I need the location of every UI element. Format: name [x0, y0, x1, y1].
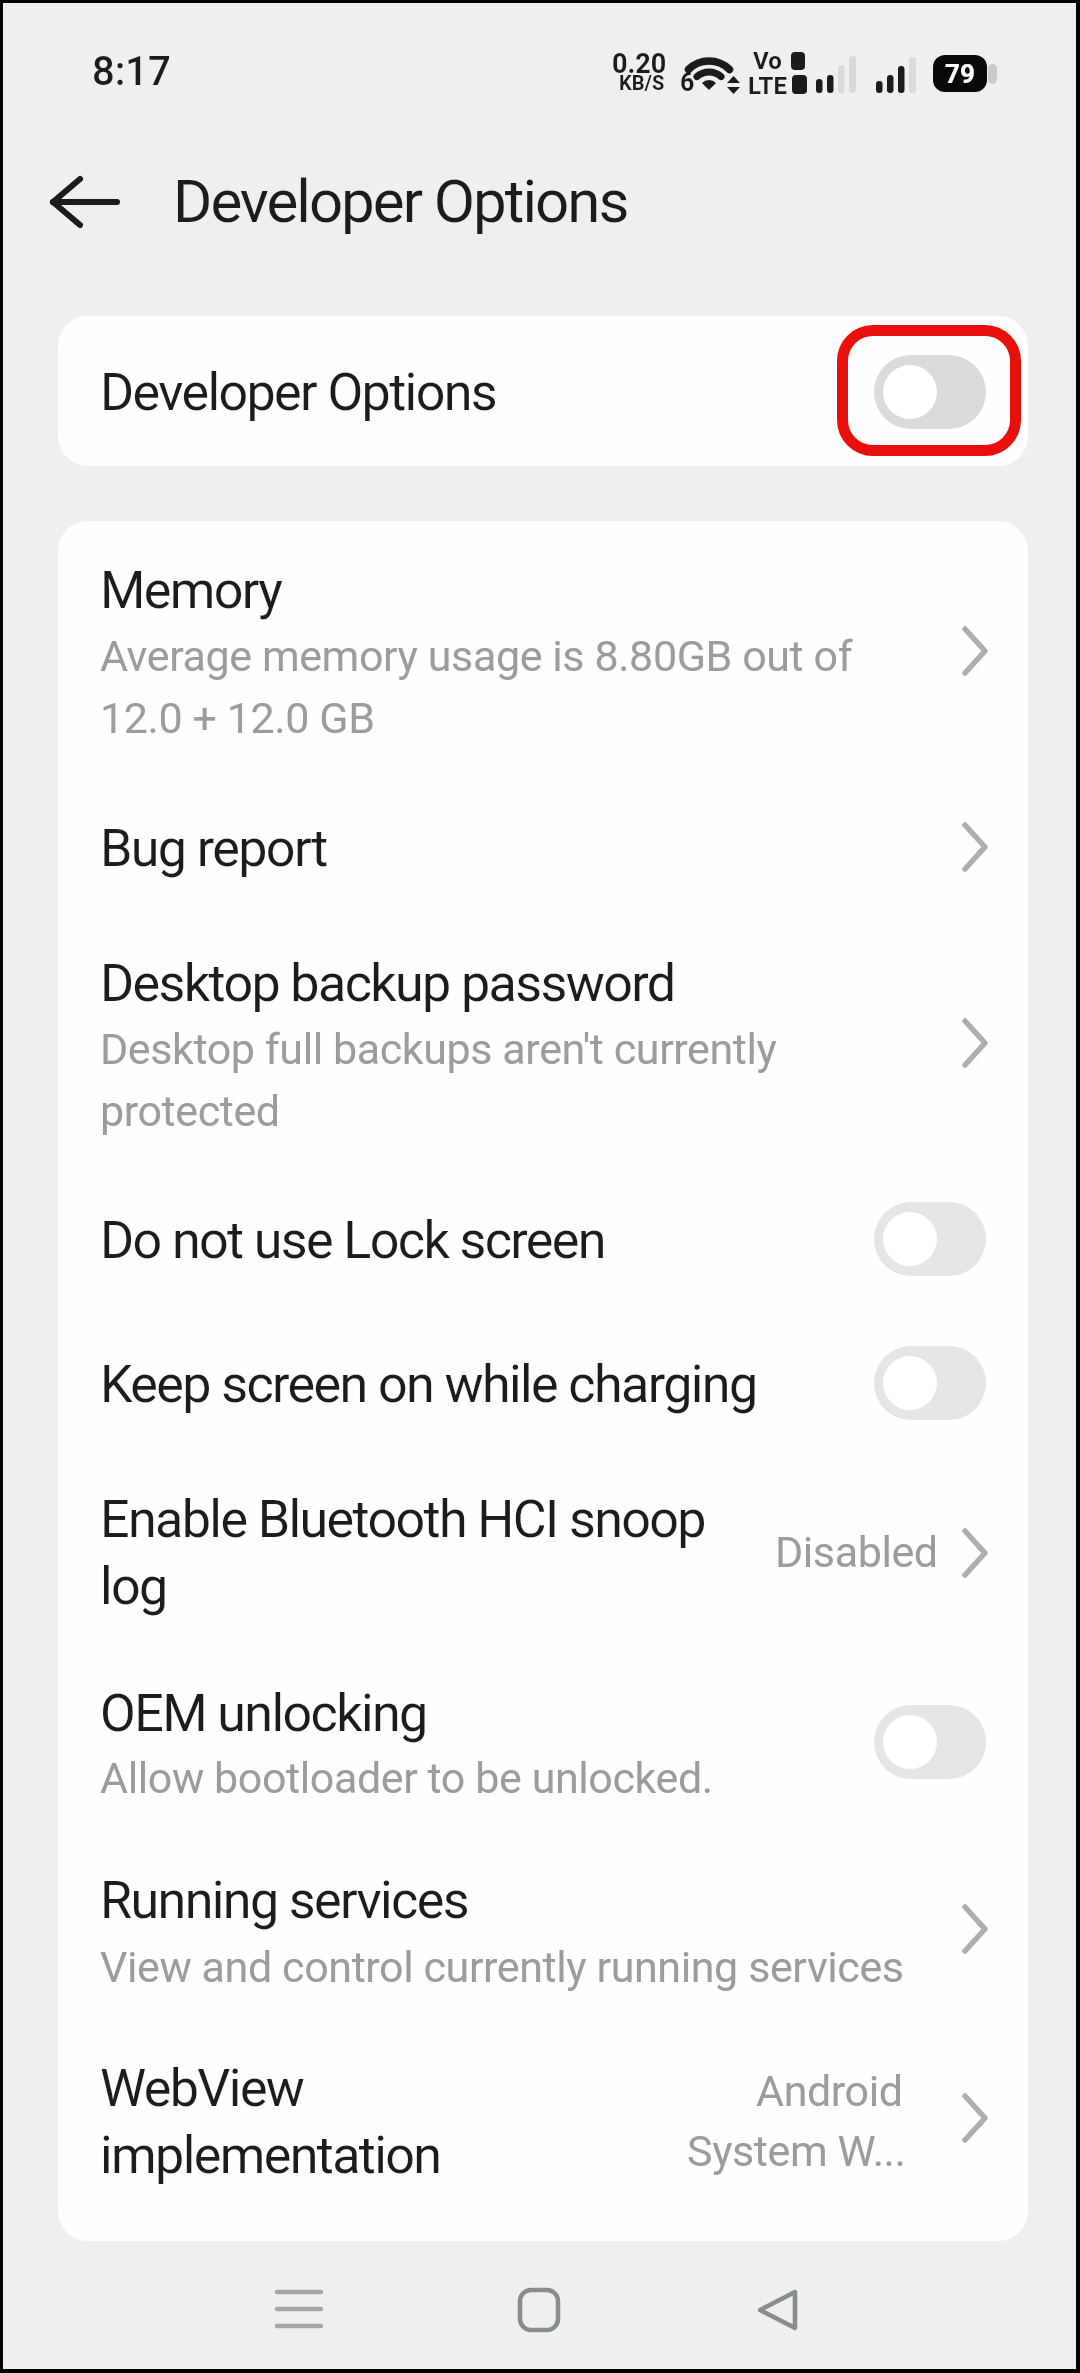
staticText: Bug report [100, 818, 327, 879]
staticText: WebView [100, 2058, 304, 2119]
button[interactable] [58, 773, 1028, 913]
button[interactable] [259, 2270, 339, 2350]
staticText: Developer Options [100, 362, 497, 423]
button[interactable] [58, 521, 1028, 773]
staticText: Enable Bluetooth HCI snoop [100, 1489, 705, 1550]
button[interactable] [874, 1346, 986, 1420]
button[interactable] [58, 316, 1028, 466]
staticText: implementation [100, 2125, 441, 2186]
staticText: Memory [100, 560, 282, 621]
staticText: Keep screen on while charging [100, 1354, 757, 1415]
staticText: 12.0 + 12.0 GB [100, 693, 375, 743]
staticText: Allow bootloader to be unlocked. [100, 1753, 713, 1803]
button[interactable] [738, 2270, 818, 2350]
staticText: log [100, 1556, 167, 1617]
staticText: Disabled [775, 1527, 938, 1577]
staticText: Vo [753, 47, 782, 75]
staticText: Running services [100, 1870, 468, 1931]
staticText: Desktop backup password [100, 953, 675, 1014]
button[interactable] [58, 1651, 1028, 1841]
button[interactable] [874, 355, 986, 429]
staticText: System W... [687, 2126, 906, 2176]
button[interactable] [58, 1175, 1028, 1311]
button[interactable] [58, 913, 1028, 1175]
staticText: Average memory usage is 8.80GB out of [100, 631, 853, 681]
button[interactable] [874, 1705, 986, 1779]
button[interactable] [58, 1311, 1028, 1451]
staticText: LTE [748, 72, 787, 100]
staticText: Developer Options [173, 166, 628, 236]
staticText: 8:17 [92, 48, 171, 95]
button[interactable] [499, 2270, 579, 2350]
staticText: OEM unlocking [100, 1683, 427, 1744]
staticText: KB/S [619, 71, 665, 94]
staticText: Android [756, 2066, 903, 2116]
button[interactable] [58, 1841, 1028, 2031]
staticText: View and control currently running servi… [100, 1942, 904, 1992]
staticText: Do not use Lock screen [100, 1210, 605, 1271]
button[interactable] [47, 174, 123, 230]
button[interactable] [58, 1451, 1028, 1651]
staticText: Desktop full backups aren't currently [100, 1024, 777, 1074]
staticText: protected [100, 1086, 280, 1136]
staticText: 0.20 [612, 48, 667, 80]
button[interactable] [874, 1202, 986, 1276]
button[interactable] [58, 2031, 1028, 2241]
staticText: 79 [945, 59, 975, 89]
staticText: 6 [680, 68, 695, 97]
